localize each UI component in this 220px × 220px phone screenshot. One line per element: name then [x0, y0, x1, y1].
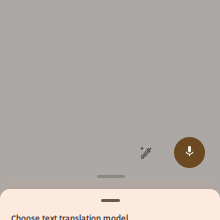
button[interactable]: Record [174, 137, 205, 168]
button[interactable]: Turn off automatic translation [135, 141, 159, 165]
staticText: Choose text translation model [11, 213, 128, 220]
